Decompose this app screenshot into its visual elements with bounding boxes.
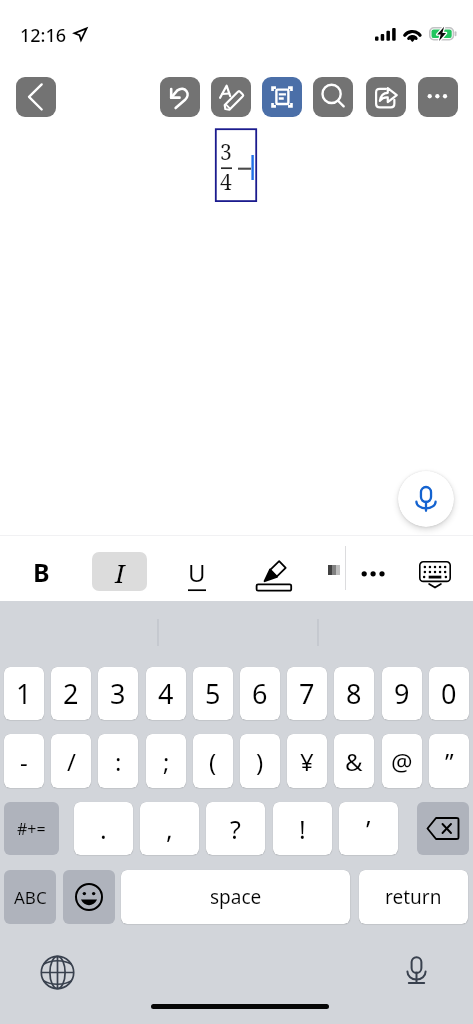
staticText: ¥ <box>300 745 314 778</box>
button[interactable]: 5 <box>193 667 233 720</box>
button[interactable]: Highlight <box>253 548 295 592</box>
button[interactable]: Backspace <box>417 802 469 855</box>
staticText: ” <box>445 745 454 778</box>
button[interactable]: Convert handwriting to text <box>211 77 251 117</box>
staticText: 7 <box>299 675 315 712</box>
button[interactable]: U <box>177 554 217 593</box>
button[interactable]: B <box>21 551 61 590</box>
button[interactable]: Share <box>366 77 406 117</box>
staticText: 12:16 <box>20 23 67 48</box>
button[interactable]: 0 <box>429 667 469 720</box>
button[interactable]: Hide keyboard <box>416 560 454 590</box>
button[interactable]: & <box>334 734 374 788</box>
staticText: . <box>100 812 107 846</box>
staticText: 3 <box>220 138 232 167</box>
button[interactable]: More options <box>418 77 458 117</box>
staticText: 2 <box>63 675 79 712</box>
button[interactable]: I <box>92 552 147 591</box>
button[interactable]: ’ <box>339 802 398 855</box>
staticText: ’ <box>366 812 371 846</box>
button[interactable]: 7 <box>287 667 327 720</box>
staticText: / <box>67 745 76 778</box>
staticText: 0 <box>441 675 457 712</box>
button[interactable]: #+= <box>4 802 59 855</box>
button[interactable]: ! <box>273 802 332 855</box>
button[interactable]: . <box>74 802 133 855</box>
button[interactable]: space <box>121 870 350 924</box>
button[interactable]: Change keyboard language <box>40 955 75 990</box>
staticText: ( <box>209 745 217 778</box>
staticText: & <box>345 745 363 778</box>
button[interactable]: Undo <box>160 77 200 117</box>
button[interactable]: ABC <box>4 870 56 924</box>
button[interactable]: More formatting options <box>355 556 393 592</box>
button[interactable]: ; <box>146 734 186 788</box>
staticText: 1 <box>16 675 32 712</box>
staticText: space <box>210 884 262 910</box>
button[interactable]: Dictate <box>399 953 434 988</box>
button[interactable]: ¥ <box>287 734 327 788</box>
staticText: 3 <box>110 675 126 712</box>
staticText: ABC <box>14 886 47 909</box>
button[interactable]: 2 <box>51 667 91 720</box>
button[interactable]: @ <box>382 734 422 788</box>
staticText: 6 <box>252 675 268 712</box>
staticText: 4 <box>158 675 174 712</box>
button[interactable]: 3 <box>98 667 138 720</box>
button[interactable]: Emoji <box>63 870 115 924</box>
button[interactable]: 1 <box>4 667 44 720</box>
staticText: ! <box>299 812 306 846</box>
button[interactable]: Back <box>16 77 56 117</box>
staticText: 8 <box>346 675 362 712</box>
staticText: #+= <box>17 818 46 840</box>
button[interactable]: 8 <box>334 667 374 720</box>
staticText: 9 <box>394 675 410 712</box>
button[interactable]: - <box>4 734 44 788</box>
button[interactable]: / <box>51 734 91 788</box>
staticText: - <box>20 745 28 778</box>
staticText: return <box>385 884 442 910</box>
staticText: , <box>166 812 173 846</box>
staticText: @ <box>391 745 413 778</box>
button[interactable]: Search <box>313 77 353 117</box>
staticText: I <box>115 555 125 590</box>
staticText: U <box>188 556 206 589</box>
staticText: ? <box>230 812 241 846</box>
staticText: 4 <box>220 168 232 197</box>
button[interactable]: Voice input <box>398 471 454 527</box>
button[interactable]: return <box>359 870 468 924</box>
button[interactable]: ) <box>240 734 280 788</box>
button[interactable]: 9 <box>382 667 422 720</box>
staticText: : <box>115 745 122 778</box>
staticText: 5 <box>205 675 221 712</box>
button[interactable]: 4 <box>146 667 186 720</box>
button[interactable]: ? <box>206 802 265 855</box>
button[interactable]: 6 <box>240 667 280 720</box>
button[interactable]: : <box>98 734 138 788</box>
button[interactable]: , <box>140 802 199 855</box>
staticText: ) <box>256 745 264 778</box>
staticText: ; <box>163 745 170 778</box>
button[interactable]: ( <box>193 734 233 788</box>
button[interactable]: Select object <box>262 77 302 117</box>
button[interactable]: ” <box>429 734 469 788</box>
staticText: B <box>33 555 50 589</box>
